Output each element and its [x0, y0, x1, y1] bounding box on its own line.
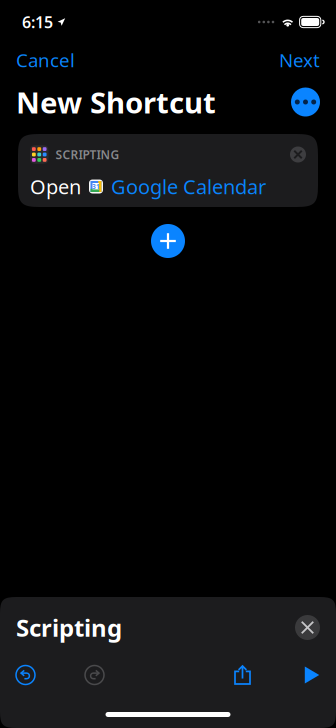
button[interactable]: Cancel — [15, 37, 76, 75]
button[interactable]: Add action — [151, 224, 185, 258]
button[interactable]: Share — [234, 665, 251, 685]
button[interactable]: Close — [295, 615, 320, 640]
button[interactable]: Next — [278, 37, 321, 75]
staticText: Next — [279, 48, 320, 72]
button[interactable]: Remove action — [290, 146, 306, 162]
staticText: 6:15 — [22, 11, 53, 33]
button[interactable]: Undo — [16, 665, 35, 684]
button[interactable]: More options — [291, 87, 320, 116]
staticText: Scripting — [16, 612, 122, 643]
staticText: 31 — [92, 182, 100, 191]
staticText: New Shortcut — [16, 82, 216, 121]
staticText: Cancel — [16, 48, 75, 72]
button[interactable]: Run shortcut — [304, 666, 320, 684]
staticText: SCRIPTING — [55, 146, 119, 162]
staticText: Google Calendar — [111, 173, 266, 200]
button[interactable]: Redo — [85, 665, 104, 684]
staticText: Open — [30, 173, 81, 200]
